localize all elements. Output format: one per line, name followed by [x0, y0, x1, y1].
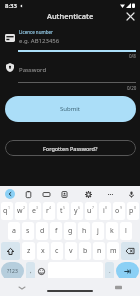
- staticText: 6: [78, 205, 81, 210]
- staticText: r: [46, 206, 49, 216]
- staticText: Password: [19, 66, 47, 74]
- staticText: 5: [63, 205, 66, 210]
- button[interactable]: p: [127, 202, 139, 220]
- button[interactable]: v: [65, 242, 77, 260]
- staticText: ,: [30, 267, 32, 275]
- staticText: f: [55, 226, 58, 236]
- button[interactable]: i: [99, 202, 111, 220]
- staticText: Submit: [60, 105, 81, 113]
- button[interactable]: e: [29, 202, 41, 220]
- button[interactable]: z: [22, 242, 35, 260]
- button[interactable]: w: [15, 202, 27, 220]
- button[interactable]: y: [71, 202, 83, 220]
- button[interactable]: s: [22, 222, 34, 240]
- staticText: e.g. AB123456: [19, 37, 60, 45]
- button[interactable]: k: [106, 222, 118, 240]
- button[interactable]: Submit: [5, 96, 136, 122]
- button[interactable]: Emoji: [37, 262, 46, 280]
- button[interactable]: Space: [48, 262, 103, 280]
- staticText: 3: [36, 205, 39, 210]
- button[interactable]: f: [50, 222, 62, 240]
- staticText: x: [41, 246, 45, 256]
- button[interactable]: n: [93, 242, 105, 260]
- button[interactable]: l: [120, 222, 132, 240]
- button[interactable]: j: [92, 222, 104, 240]
- staticText: p: [129, 206, 134, 216]
- staticText: ?123: [7, 268, 18, 275]
- staticText: 8:33: [5, 2, 17, 10]
- button[interactable]: q: [1, 202, 13, 220]
- staticText: a: [12, 226, 16, 236]
- staticText: g: [68, 226, 73, 236]
- staticText: Authenticate: [47, 11, 94, 21]
- staticText: 1: [8, 205, 11, 210]
- staticText: m: [110, 246, 117, 256]
- staticText: n: [97, 246, 102, 256]
- button[interactable]: m: [107, 242, 119, 260]
- staticText: d: [40, 226, 45, 236]
- staticText: t: [60, 206, 63, 216]
- button[interactable]: Password: [0, 59, 140, 87]
- staticText: 4: [49, 205, 52, 210]
- staticText: z: [27, 246, 31, 256]
- button[interactable]: Close: [123, 9, 138, 24]
- button[interactable]: t: [57, 202, 69, 220]
- staticText: o: [115, 206, 120, 216]
- staticText: 0: [134, 205, 137, 210]
- button[interactable]: d: [36, 222, 48, 240]
- staticText: v: [69, 246, 73, 256]
- staticText: 9: [120, 205, 123, 210]
- button[interactable]: h: [78, 222, 90, 240]
- button[interactable]: Forgotten Password?: [5, 140, 136, 156]
- button[interactable]: Settings: [82, 188, 94, 200]
- staticText: 0/8: [129, 53, 136, 59]
- staticText: .: [109, 267, 111, 275]
- staticText: 0/20: [127, 85, 137, 91]
- staticText: 2: [23, 205, 26, 210]
- button[interactable]: GIF: [40, 188, 52, 200]
- staticText: 7: [92, 205, 95, 210]
- staticText: e: [32, 206, 36, 216]
- staticText: Licence number: [19, 29, 53, 35]
- staticText: w: [17, 206, 23, 216]
- button[interactable]: b: [79, 242, 91, 260]
- button[interactable]: x: [37, 242, 49, 260]
- button[interactable]: Google Assistant: [5, 189, 15, 199]
- staticText: q: [3, 206, 8, 216]
- button[interactable]: .: [105, 262, 114, 280]
- button[interactable]: Hide keyboard: [15, 281, 29, 295]
- button[interactable]: Enter: [116, 262, 139, 280]
- button[interactable]: Voice input: [125, 188, 137, 200]
- button[interactable]: Licence number: [0, 28, 140, 56]
- staticText: s: [26, 226, 30, 236]
- button[interactable]: o: [113, 202, 125, 220]
- staticText: Forgotten Password?: [43, 145, 98, 152]
- staticText: c: [55, 246, 59, 256]
- button[interactable]: Shift: [1, 242, 20, 260]
- staticText: b: [83, 246, 88, 256]
- staticText: j: [97, 226, 99, 236]
- button[interactable]: u: [85, 202, 97, 220]
- button[interactable]: r: [43, 202, 55, 220]
- staticText: h: [82, 226, 87, 236]
- button[interactable]: Change keyboard: [111, 280, 125, 294]
- button[interactable]: g: [64, 222, 76, 240]
- staticText: k: [110, 226, 114, 236]
- button[interactable]: ?123: [1, 262, 24, 280]
- button[interactable]: Clipboard: [22, 188, 34, 200]
- button[interactable]: a: [8, 222, 20, 240]
- staticText: 8: [105, 205, 108, 210]
- staticText: u: [87, 206, 92, 216]
- button[interactable]: ,: [26, 262, 35, 280]
- staticText: l: [125, 226, 127, 236]
- staticText: y: [74, 206, 78, 216]
- button[interactable]: c: [51, 242, 63, 260]
- staticText: i: [103, 206, 105, 216]
- button[interactable]: More options: [104, 188, 116, 200]
- button[interactable]: Stickers: [58, 188, 70, 200]
- button[interactable]: Backspace: [121, 242, 139, 260]
